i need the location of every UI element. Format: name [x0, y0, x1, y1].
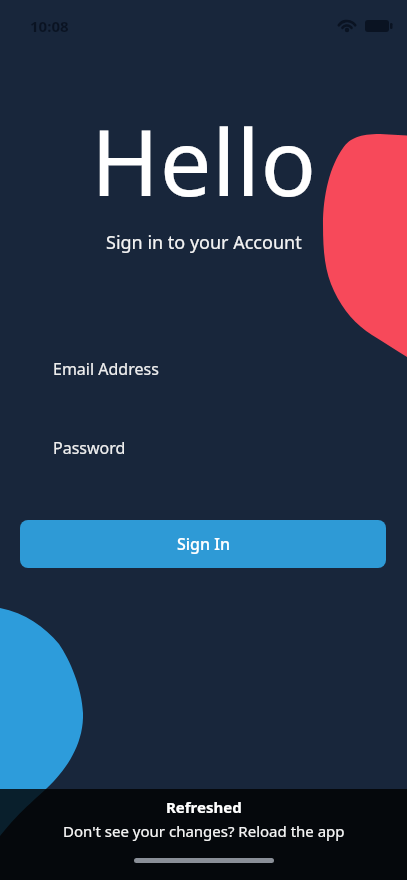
staticText: Don't see your changes? Reload the app	[63, 821, 345, 841]
staticText: 10:08	[30, 16, 69, 36]
staticText: Sign in to your Account	[106, 230, 302, 255]
button[interactable]: Password	[36, 427, 382, 467]
staticText: Email Address	[53, 358, 159, 380]
button[interactable]: Sign In	[20, 520, 386, 568]
staticText: Refreshed	[166, 797, 242, 817]
button[interactable]: Email Address	[36, 348, 382, 388]
button[interactable]: Refreshed	[0, 789, 407, 880]
staticText: Sign In	[177, 533, 230, 555]
staticText: Hello	[91, 98, 317, 223]
staticText: Password	[53, 437, 126, 459]
